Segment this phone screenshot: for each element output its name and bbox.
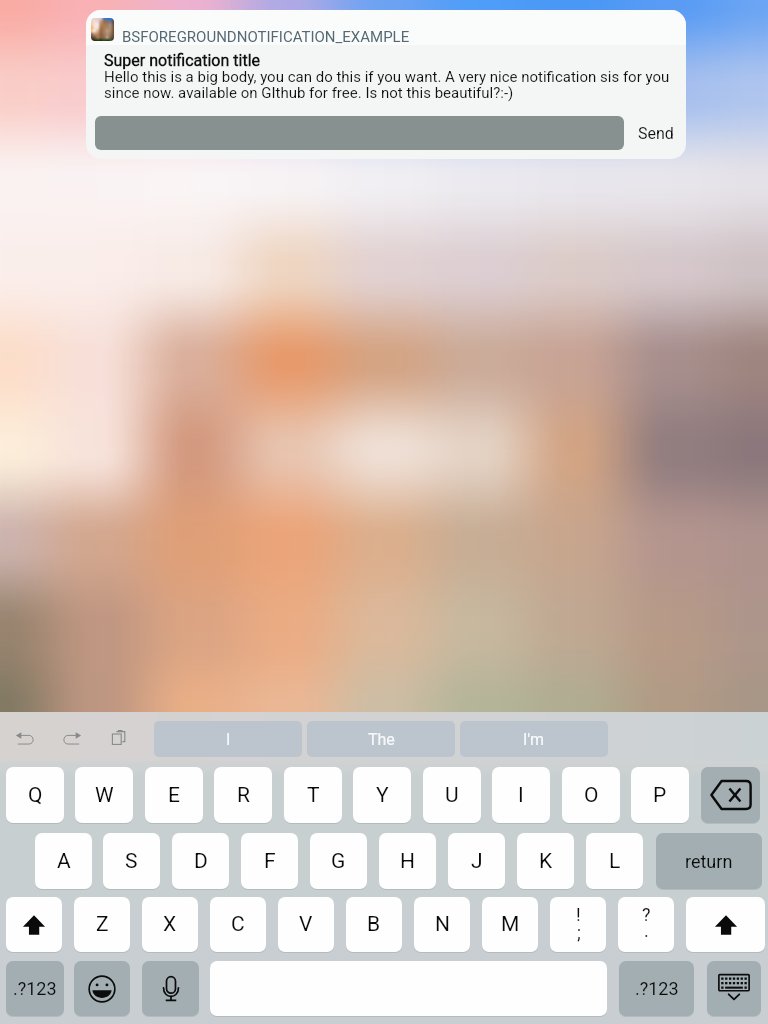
staticText: R [237,783,250,808]
staticText: G [331,849,346,874]
button[interactable]: ! [550,897,606,952]
staticText: S [125,849,138,874]
button[interactable]: Z [74,897,130,952]
button[interactable]: Backspace [701,767,760,823]
button[interactable]: N [414,897,470,952]
staticText: Y [376,783,389,808]
staticText: M [501,912,520,937]
staticText: B [367,912,381,937]
button[interactable]: BSFOREGROUNDNOTIFICATION_EXAMPLE [86,10,686,159]
staticText: N [435,912,450,937]
button[interactable]: G [310,833,367,889]
button[interactable]: The [307,721,455,757]
staticText: H [400,849,415,874]
button[interactable]: .?123 [6,961,64,1016]
button[interactable]: Redo [54,721,88,757]
button[interactable]: F [241,833,298,889]
staticText: X [163,912,177,937]
staticText: Send [638,124,674,143]
button[interactable]: Voice input [142,961,199,1016]
button[interactable]: V [278,897,334,952]
staticText: L [609,849,621,874]
staticText: ? [642,904,651,925]
button[interactable]: C [210,897,266,952]
button[interactable]: return [656,833,762,889]
staticText: ; [577,922,581,943]
button[interactable]: Clipboard [101,720,135,756]
staticText: U [445,783,459,808]
button[interactable]: L [586,833,643,889]
button[interactable]: A [35,833,92,889]
button[interactable]: I [492,767,550,823]
staticText: ! [576,904,581,925]
staticText: K [539,849,553,874]
button[interactable]: H [379,833,436,889]
staticText: return [685,851,733,872]
button[interactable]: J [448,833,505,889]
staticText: Z [96,912,109,937]
button[interactable]: E [145,767,203,823]
staticText: I'm [523,730,545,749]
button[interactable]: X [142,897,198,952]
button[interactable]: Emoji [74,961,130,1016]
staticText: .?123 [635,978,679,999]
button[interactable]: U [423,767,481,823]
button[interactable]: M [482,897,538,952]
button[interactable]: W [75,767,133,823]
staticText: . [644,920,649,941]
staticText: .?123 [13,978,57,999]
button[interactable]: S [103,833,160,889]
button[interactable]: B [346,897,402,952]
button[interactable]: Undo [8,721,42,757]
staticText: P [653,783,667,808]
staticText: BSFOREGROUNDNOTIFICATION_EXAMPLE [122,28,410,46]
button[interactable]: Shift [686,897,765,952]
staticText: D [194,849,208,874]
button[interactable]: P [631,767,689,823]
staticText: T [307,783,320,808]
staticText: Hello this is a big body, you can do thi… [104,68,672,101]
staticText: C [231,912,245,937]
button[interactable]: T [284,767,342,823]
staticText: J [471,849,483,874]
staticText: Super notification title [104,51,260,70]
button[interactable]: Shift [6,897,62,952]
button[interactable]: .?123 [619,961,694,1016]
staticText: The [368,730,395,749]
button[interactable]: ? [618,897,674,952]
button[interactable]: K [517,833,574,889]
staticText: Q [28,783,43,808]
staticText: E [168,783,180,808]
staticText: V [299,912,313,937]
button[interactable]: Q [6,767,64,823]
button[interactable]: R [214,767,272,823]
button[interactable]: I [154,721,302,757]
staticText: I [226,730,231,749]
staticText: O [584,783,599,808]
button[interactable]: Hide keyboard [707,961,761,1016]
button[interactable]: Send [630,116,682,150]
button[interactable]: O [562,767,620,823]
staticText: A [57,849,71,874]
staticText: F [264,849,276,874]
button[interactable]: I'm [460,721,608,757]
button[interactable]: D [172,833,229,889]
button[interactable] [95,116,624,150]
button[interactable]: Y [353,767,411,823]
staticText: I [518,783,524,808]
staticText: W [95,783,114,808]
